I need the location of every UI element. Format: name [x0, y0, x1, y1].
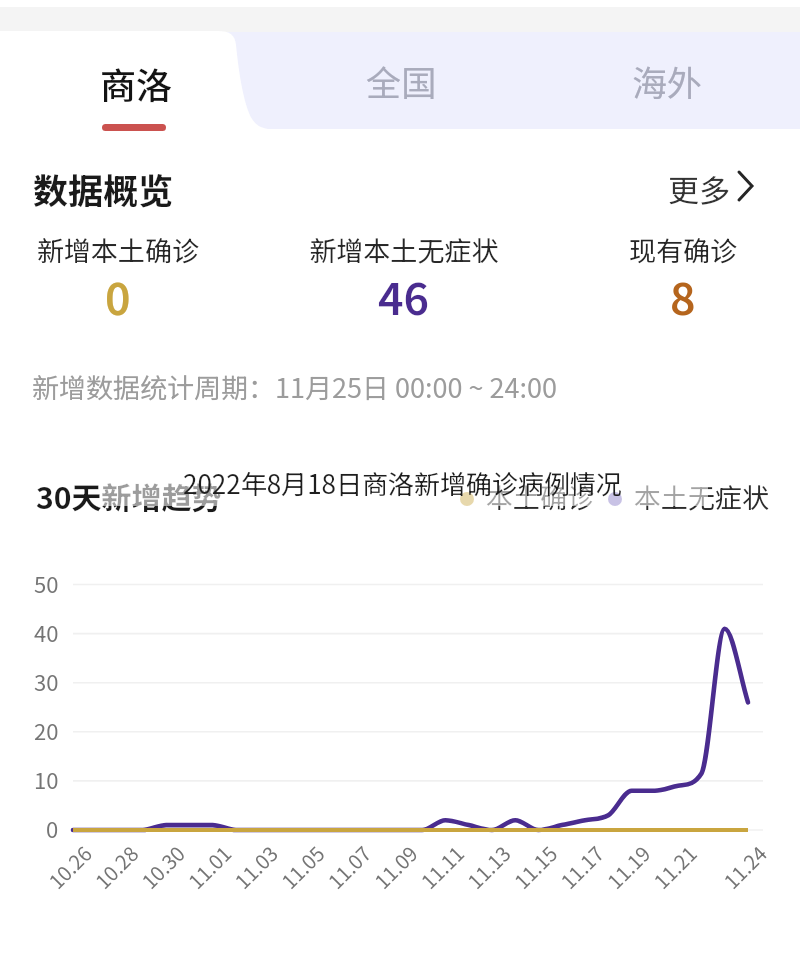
button[interactable]: [268, 31, 534, 131]
button[interactable]: [0, 31, 248, 131]
button[interactable]: 更多: [660, 164, 770, 212]
button[interactable]: 本土确诊: [458, 480, 588, 514]
button[interactable]: 本土无症状: [605, 480, 770, 514]
button[interactable]: [534, 31, 800, 131]
